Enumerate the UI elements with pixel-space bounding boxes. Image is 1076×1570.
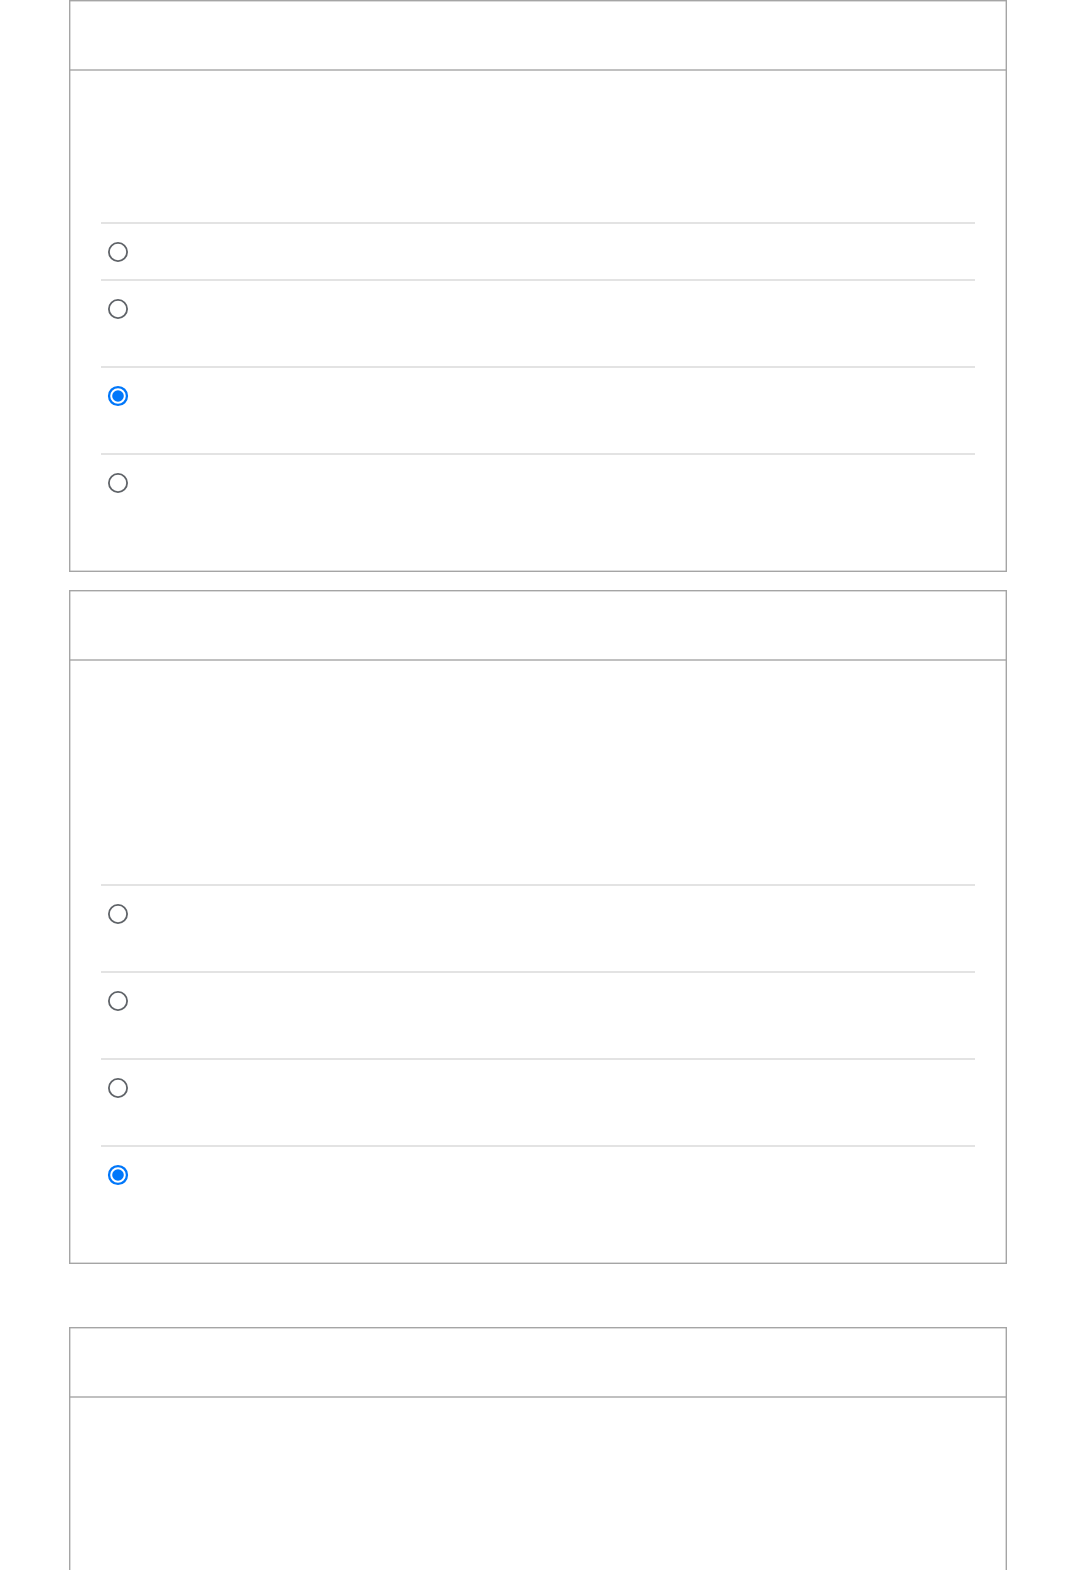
button[interactable]: Answer option 3, selected xyxy=(69,367,1007,454)
button[interactable]: Answer option 1 xyxy=(69,223,1007,280)
button[interactable]: Answer option 4, selected xyxy=(69,1146,1007,1263)
button[interactable]: Answer option 1 xyxy=(69,885,1007,972)
button[interactable]: Answer option 4 xyxy=(69,454,1007,571)
button[interactable]: Question 2 xyxy=(69,590,1007,660)
button[interactable]: Answer option 2 xyxy=(69,972,1007,1059)
button[interactable]: Question 3 xyxy=(69,1327,1007,1397)
button[interactable]: Answer option 3 xyxy=(69,1059,1007,1146)
button[interactable]: Question 1 xyxy=(69,0,1007,70)
button[interactable]: Answer option 2 xyxy=(69,280,1007,367)
